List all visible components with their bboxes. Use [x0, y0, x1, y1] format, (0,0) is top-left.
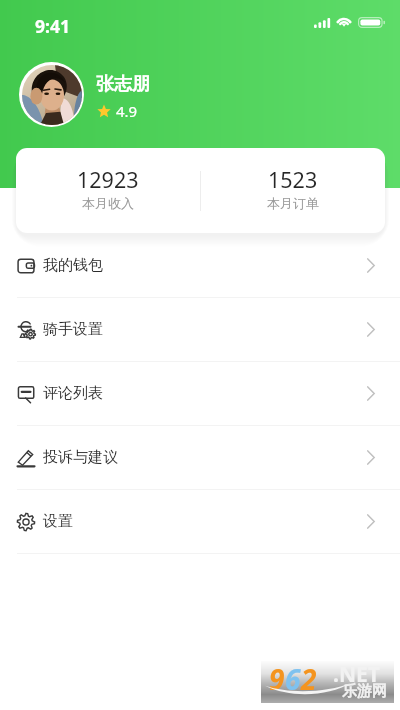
- staticText: 本月订单: [267, 195, 319, 211]
- staticText: 张志朋: [96, 73, 150, 96]
- button[interactable]: 评论列表: [0, 362, 400, 426]
- staticText: 9:41: [35, 14, 70, 38]
- staticText: 乐游网: [342, 682, 387, 701]
- staticText: 本月收入: [82, 195, 134, 211]
- staticText: 1523: [268, 165, 318, 194]
- staticText: 骑手设置: [43, 320, 103, 339]
- staticText: 投诉与建议: [43, 448, 118, 467]
- staticText: 9: [269, 660, 285, 698]
- button[interactable]: 投诉与建议: [0, 426, 400, 490]
- staticText: 4.9: [116, 101, 138, 121]
- button[interactable]: 设置: [0, 490, 400, 554]
- staticText: .NET: [333, 660, 380, 689]
- staticText: 12923: [77, 165, 139, 194]
- staticText: 设置: [43, 512, 73, 531]
- staticText: 6: [285, 660, 301, 698]
- button[interactable]: 我的钱包: [0, 234, 400, 298]
- staticText: 我的钱包: [43, 256, 103, 275]
- staticText: 2: [301, 660, 317, 698]
- button[interactable]: 骑手设置: [0, 298, 400, 362]
- staticText: 评论列表: [43, 384, 103, 403]
- button[interactable]: 张志朋: [19, 62, 150, 127]
